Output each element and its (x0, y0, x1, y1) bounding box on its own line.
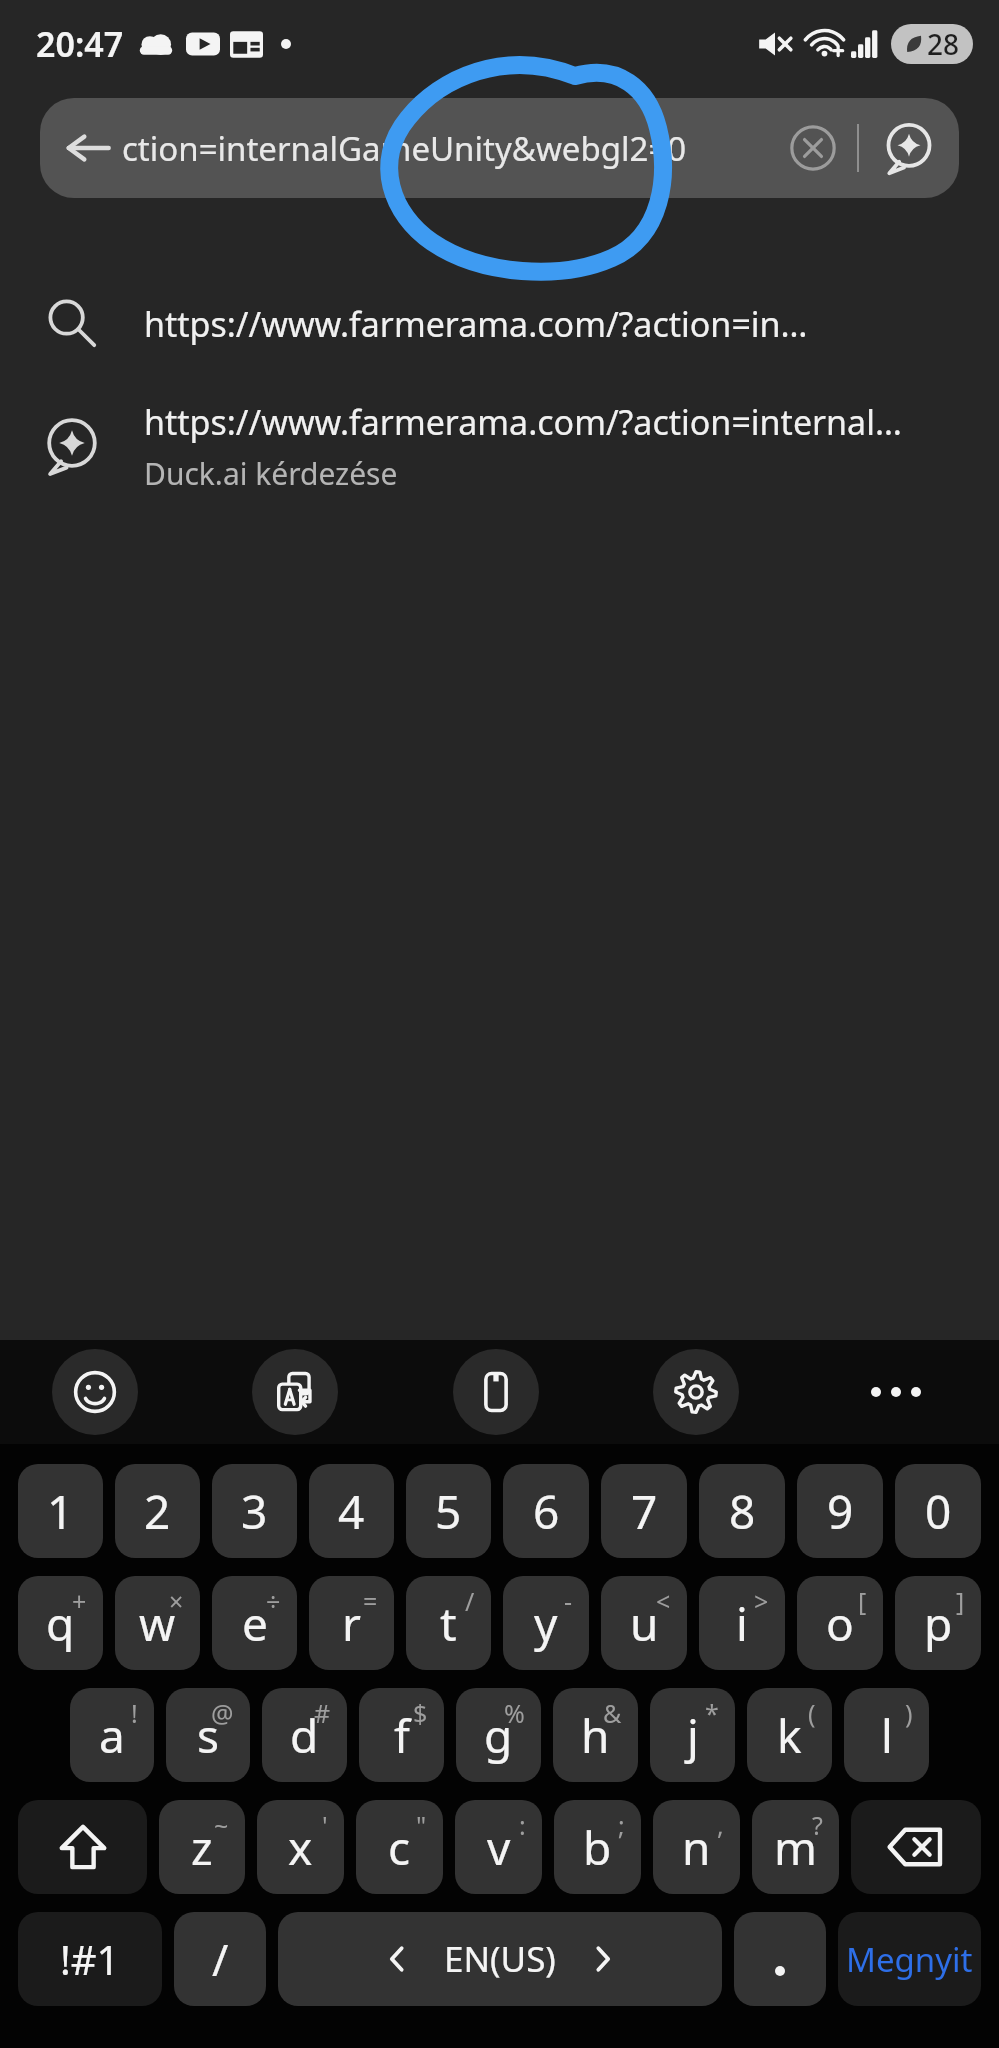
staticText: z (191, 1816, 213, 1879)
button[interactable]: 8 (699, 1464, 785, 1558)
staticText: 7 (631, 1480, 658, 1543)
button[interactable]: 2 (115, 1464, 200, 1558)
button[interactable]: https://www.farmerama.com/?action=intern… (0, 394, 999, 498)
button[interactable]: Clipboard (453, 1349, 539, 1435)
staticText: 0 (925, 1480, 952, 1543)
button[interactable]: i (699, 1576, 785, 1670)
staticText: 9 (827, 1480, 854, 1543)
button[interactable]: 1 (18, 1464, 103, 1558)
button[interactable]: l (844, 1688, 929, 1782)
staticText: t (440, 1592, 457, 1655)
staticText: / (465, 1584, 475, 1618)
button[interactable]: w (115, 1576, 200, 1670)
button[interactable]: c (356, 1800, 443, 1894)
button[interactable]: / (174, 1912, 266, 2006)
button[interactable]: Translate (252, 1349, 338, 1435)
staticText: !#1 (60, 1932, 120, 1986)
button[interactable]: 3 (212, 1464, 297, 1558)
button[interactable]: r (309, 1576, 394, 1670)
button[interactable]: Back (56, 116, 120, 180)
button[interactable]: Ask Duck.ai (871, 110, 947, 186)
button[interactable]: Shift (18, 1800, 147, 1894)
staticText: Megnyit (846, 1937, 973, 1982)
button[interactable]: More options (853, 1349, 939, 1435)
staticText: j (687, 1704, 699, 1767)
staticText: $ (413, 1696, 428, 1730)
staticText: y (534, 1592, 558, 1655)
button[interactable]: s (166, 1688, 250, 1782)
staticText: 20:47 (36, 21, 124, 67)
staticText: v (487, 1816, 511, 1879)
button[interactable]: !#1 (18, 1912, 162, 2006)
button[interactable]: m (752, 1800, 839, 1894)
staticText: ! (131, 1696, 138, 1730)
staticText: x (288, 1816, 313, 1879)
staticText: e (242, 1592, 268, 1655)
staticText: % (504, 1696, 525, 1730)
button[interactable]: v (455, 1800, 542, 1894)
staticText: + (72, 1584, 87, 1618)
button[interactable]: y (503, 1576, 589, 1670)
staticText: https://www.farmerama.com/?action=intern… (144, 399, 902, 445)
staticText: , (717, 1808, 724, 1842)
staticText: & (603, 1696, 622, 1730)
button[interactable]: Clear text (781, 116, 845, 180)
staticText: # (314, 1696, 331, 1730)
staticText: ? (812, 1808, 823, 1842)
button[interactable]: 4 (309, 1464, 394, 1558)
button[interactable]: t (406, 1576, 491, 1670)
button[interactable]: k (747, 1688, 832, 1782)
button[interactable]: o (797, 1576, 883, 1670)
staticText: × (169, 1584, 184, 1618)
button[interactable]: 5 (406, 1464, 491, 1558)
staticText: 4 (338, 1480, 365, 1543)
button[interactable]: 6 (503, 1464, 589, 1558)
staticText: ' (322, 1808, 328, 1842)
button[interactable]: p (895, 1576, 981, 1670)
staticText: = (363, 1584, 378, 1618)
button[interactable]: g (456, 1688, 541, 1782)
button[interactable]: b (554, 1800, 641, 1894)
staticText: o (826, 1592, 854, 1655)
button[interactable]: 7 (601, 1464, 687, 1558)
staticText: EN(US) (444, 1935, 556, 1983)
staticText: b (583, 1816, 612, 1879)
staticText: : (519, 1808, 526, 1842)
button[interactable]: Space, EN(US) (278, 1912, 722, 2006)
staticText: i (736, 1592, 748, 1655)
button[interactable]: e (212, 1576, 297, 1670)
button[interactable]: z (159, 1800, 245, 1894)
button[interactable]: n (653, 1800, 740, 1894)
button[interactable]: Megnyit (838, 1912, 981, 2006)
button[interactable]: 0 (895, 1464, 981, 1558)
button[interactable]: x (257, 1800, 344, 1894)
button[interactable]: https://www.farmerama.com/?action=in… (0, 272, 999, 376)
staticText: [ (858, 1584, 867, 1618)
button[interactable]: q (18, 1576, 103, 1670)
staticText: n (682, 1816, 711, 1879)
staticText: a (99, 1704, 125, 1767)
button[interactable]: u (601, 1576, 687, 1670)
button[interactable]: 9 (797, 1464, 883, 1558)
button[interactable]: f (359, 1688, 444, 1782)
button[interactable]: a (70, 1688, 154, 1782)
staticText: w (139, 1592, 176, 1655)
staticText: 2 (144, 1480, 171, 1543)
button[interactable]: Back (40, 98, 959, 198)
staticText: 8 (729, 1480, 756, 1543)
button[interactable]: Emoji (52, 1349, 138, 1435)
staticText: d (290, 1704, 319, 1767)
staticText: 3 (241, 1480, 268, 1543)
staticText: 6 (533, 1480, 560, 1543)
button[interactable]: j (650, 1688, 735, 1782)
button[interactable]: d (262, 1688, 347, 1782)
button[interactable]: Settings (653, 1349, 739, 1435)
staticText: u (630, 1592, 659, 1655)
staticText: k (777, 1704, 802, 1767)
staticText: - (564, 1584, 573, 1618)
staticText: " (416, 1808, 427, 1842)
staticText: s (197, 1704, 220, 1767)
button[interactable]: Backspace (851, 1800, 981, 1894)
button[interactable]: Period (734, 1912, 826, 2006)
button[interactable]: h (553, 1688, 638, 1782)
